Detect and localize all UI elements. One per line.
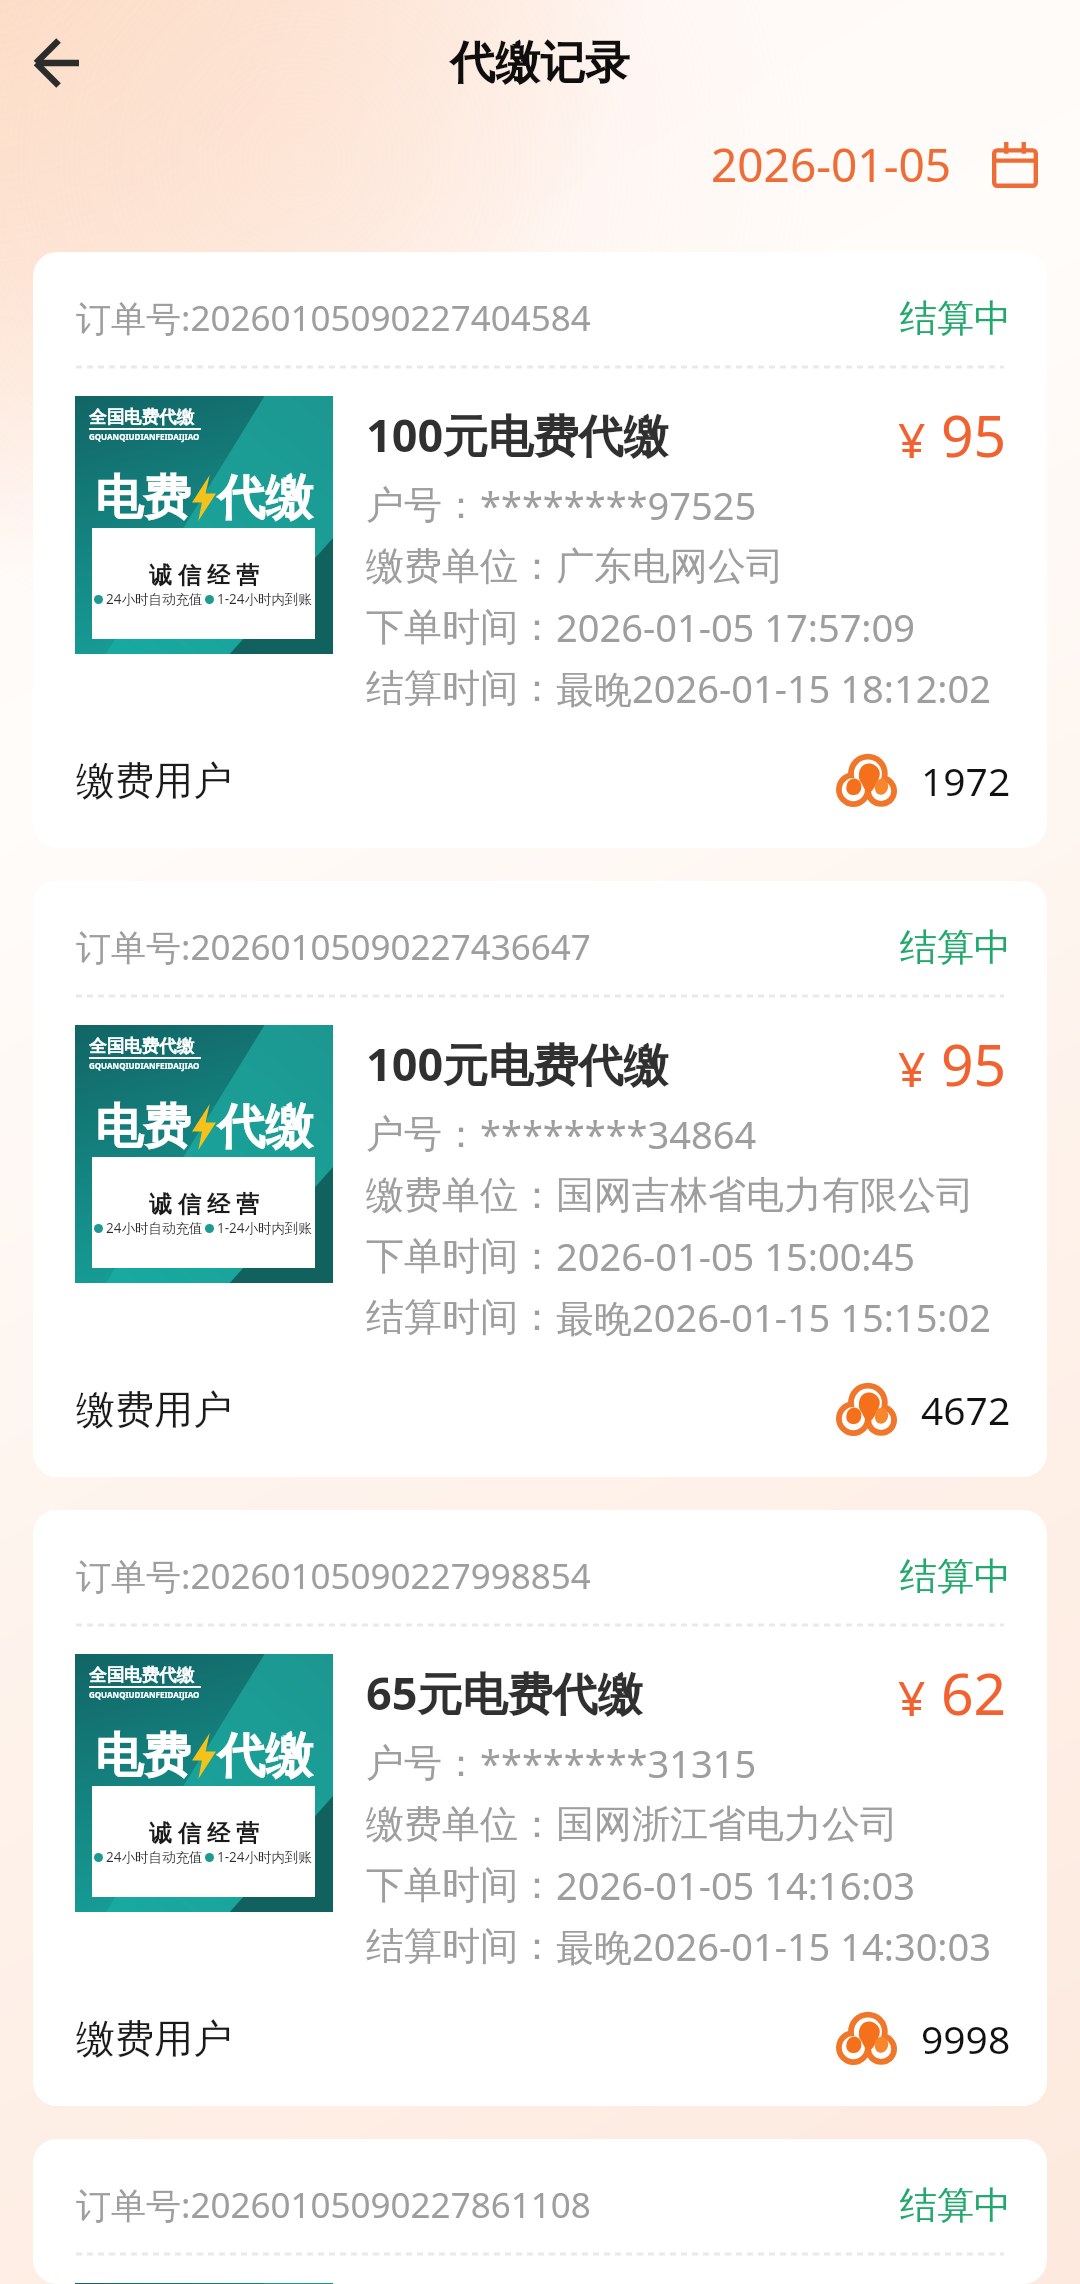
staticText: 9998 xyxy=(921,2012,1011,2065)
button[interactable]: 订单号:20260105090227861108 xyxy=(33,2139,1047,2284)
staticText: 代缴 xyxy=(217,468,313,528)
staticText: 2026-01-05 14:16:03 xyxy=(556,1859,916,1911)
staticText: 100元电费代缴 xyxy=(366,404,669,465)
staticText: ********34864 xyxy=(480,1108,757,1160)
staticText: ¥ xyxy=(898,1036,926,1101)
staticText: 诚 信 经 营 xyxy=(149,1816,259,1847)
button[interactable]: 2026-01-05 xyxy=(711,133,1038,196)
staticText: 订单号:20260105090227861108 xyxy=(76,2181,591,2229)
staticText: 结算时间： xyxy=(366,1293,556,1341)
staticText: 24小时自动充值 xyxy=(106,590,203,608)
staticText: 1-24小时内到账 xyxy=(217,590,313,608)
staticText: 订单号:20260105090227998854 xyxy=(76,1552,591,1600)
staticText: 结算中 xyxy=(900,295,1011,342)
button[interactable]: 订单号:20260105090227436647 xyxy=(33,881,1047,1477)
staticText: 24小时自动充值 xyxy=(106,1848,203,1866)
staticText: 缴费用户 xyxy=(76,756,232,805)
staticText: ********97525 xyxy=(480,479,757,531)
staticText: 国网浙江省电力公司 xyxy=(556,1800,898,1848)
staticText: ¥ xyxy=(898,407,926,472)
staticText: 电费 xyxy=(95,1097,191,1157)
staticText: 订单号:20260105090227404584 xyxy=(76,294,591,342)
staticText: 结算中 xyxy=(900,2182,1011,2229)
button[interactable]: Back xyxy=(10,18,100,108)
staticText: 1-24小时内到账 xyxy=(217,1848,313,1866)
staticText: 电费 xyxy=(95,1726,191,1786)
staticText: 电费 xyxy=(95,468,191,528)
staticText: 2026-01-05 xyxy=(711,133,952,196)
staticText: 2026-01-05 17:57:09 xyxy=(556,601,916,653)
staticText: 户号： xyxy=(366,1739,480,1787)
staticText: 1-24小时内到账 xyxy=(217,1219,313,1237)
staticText: 诚 信 经 营 xyxy=(149,558,259,589)
staticText: 2026-01-05 15:00:45 xyxy=(556,1230,916,1282)
staticText: 24小时自动充值 xyxy=(106,1219,203,1237)
staticText: 户号： xyxy=(366,1110,480,1158)
staticText: 户号： xyxy=(366,481,480,529)
staticText: 结算时间： xyxy=(366,1922,556,1970)
staticText: 95 xyxy=(941,396,1007,472)
staticText: 缴费用户 xyxy=(76,1385,232,1434)
staticText: 全国电费代缴 xyxy=(89,1035,194,1057)
staticText: 国网吉林省电力有限公司 xyxy=(556,1171,974,1219)
staticText: 最晚2026-01-15 15:15:02 xyxy=(556,1291,992,1343)
staticText: 下单时间： xyxy=(366,603,556,651)
staticText: 95 xyxy=(941,1025,1007,1101)
staticText: ********31315 xyxy=(480,1737,757,1789)
staticText: 广东电网公司 xyxy=(556,542,784,590)
staticText: GQUANQIUDIANFEIDAIJIAO xyxy=(89,431,200,442)
staticText: 最晚2026-01-15 14:30:03 xyxy=(556,1920,992,1972)
staticText: 结算中 xyxy=(900,924,1011,971)
staticText: 诚 信 经 营 xyxy=(149,1187,259,1218)
staticText: 结算时间： xyxy=(366,664,556,712)
staticText: 缴费单位： xyxy=(366,1800,556,1848)
staticText: 最晚2026-01-15 18:12:02 xyxy=(556,662,992,714)
staticText: 代缴 xyxy=(217,1097,313,1157)
staticText: 缴费单位： xyxy=(366,542,556,590)
staticText: 代缴记录 xyxy=(450,35,630,92)
staticText: 全国电费代缴 xyxy=(89,406,194,428)
staticText: 结算中 xyxy=(900,1553,1011,1600)
staticText: GQUANQIUDIANFEIDAIJIAO xyxy=(89,1060,200,1071)
staticText: 100元电费代缴 xyxy=(366,1033,669,1094)
staticText: 代缴 xyxy=(217,1726,313,1786)
staticText: 缴费单位： xyxy=(366,1171,556,1219)
staticText: 1972 xyxy=(921,754,1011,807)
staticText: 缴费用户 xyxy=(76,2014,232,2063)
staticText: 62 xyxy=(941,1654,1007,1730)
staticText: 全国电费代缴 xyxy=(89,1664,194,1686)
staticText: ¥ xyxy=(898,1665,926,1730)
staticText: 65元电费代缴 xyxy=(366,1662,643,1723)
staticText: 下单时间： xyxy=(366,1232,556,1280)
staticText: GQUANQIUDIANFEIDAIJIAO xyxy=(89,1689,200,1700)
staticText: 订单号:20260105090227436647 xyxy=(76,923,591,971)
button[interactable]: 订单号:20260105090227998854 xyxy=(33,1510,1047,2106)
staticText: 下单时间： xyxy=(366,1861,556,1909)
staticText: 4672 xyxy=(921,1383,1011,1436)
button[interactable]: 订单号:20260105090227404584 xyxy=(33,252,1047,848)
